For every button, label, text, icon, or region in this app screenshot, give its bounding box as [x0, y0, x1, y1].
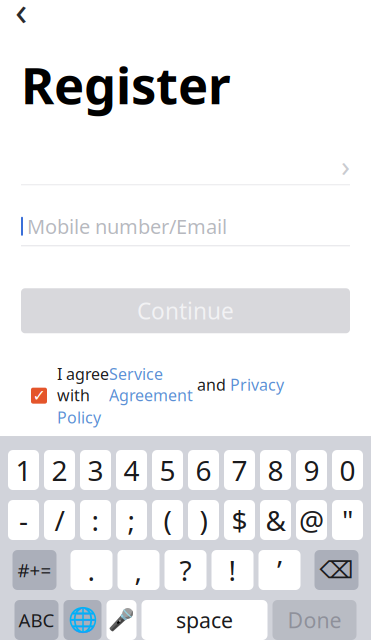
button[interactable]: -: [8, 500, 39, 540]
button[interactable]: Dictation: [106, 600, 136, 640]
staticText: Register: [21, 51, 231, 118]
button[interactable]: #+=: [12, 550, 56, 590]
staticText: ›: [341, 146, 350, 185]
button[interactable]: 6: [188, 450, 219, 490]
staticText: ?: [179, 551, 191, 589]
button[interactable]: ;: [116, 500, 147, 540]
button[interactable]: ): [188, 500, 219, 540]
staticText: ’: [277, 551, 282, 589]
button[interactable]: Continue: [21, 288, 350, 333]
button[interactable]: $: [224, 500, 255, 540]
button[interactable]: space: [141, 600, 267, 640]
button[interactable]: ABC: [14, 600, 58, 640]
button[interactable]: @: [296, 500, 327, 540]
staticText: Privacy: [230, 374, 284, 395]
button[interactable]: ?: [164, 550, 206, 590]
button[interactable]: !: [211, 550, 253, 590]
staticText: .: [87, 551, 95, 589]
staticText: ": [342, 501, 353, 539]
staticText: ,: [134, 551, 142, 589]
button[interactable]: Delete: [314, 550, 358, 590]
staticText: Continue: [137, 296, 234, 326]
button[interactable]: Policy: [57, 407, 101, 428]
button[interactable]: (: [152, 500, 183, 540]
staticText: Done: [287, 606, 341, 634]
staticText: 2: [51, 451, 67, 489]
staticText: Policy: [57, 407, 101, 428]
button[interactable]: ’: [258, 550, 300, 590]
staticText: 3: [87, 451, 103, 489]
button[interactable]: 9: [296, 450, 327, 490]
staticText: ABC: [18, 608, 54, 632]
staticText: 🌐: [67, 606, 97, 634]
staticText: 8: [267, 451, 283, 489]
staticText: Mobile number/Email: [27, 213, 227, 240]
staticText: Service Agreement: [109, 363, 193, 406]
button[interactable]: .: [70, 550, 112, 590]
button[interactable]: 5: [152, 450, 183, 490]
staticText: 7: [231, 451, 247, 489]
button[interactable]: ": [332, 500, 363, 540]
staticText: 1: [15, 451, 31, 489]
staticText: space: [176, 606, 233, 634]
button[interactable]: /: [44, 500, 75, 540]
staticText: (: [163, 501, 171, 539]
staticText: 6: [195, 451, 211, 489]
staticText: #+=: [17, 558, 51, 582]
button[interactable]: :: [80, 500, 111, 540]
button[interactable]: 1: [8, 450, 39, 490]
button[interactable]: 2: [44, 450, 75, 490]
staticText: 0: [339, 451, 355, 489]
staticText: @: [299, 501, 324, 539]
button[interactable]: Done: [272, 600, 356, 640]
staticText: 4: [123, 451, 139, 489]
button[interactable]: &: [260, 500, 291, 540]
staticText: I agree with: [57, 363, 109, 406]
button[interactable]: Country/Region: [21, 146, 350, 185]
staticText: ⌫: [319, 556, 353, 584]
staticText: /: [54, 501, 64, 539]
staticText: ;: [127, 501, 135, 539]
staticText: -: [19, 501, 28, 539]
button[interactable]: Service Agreement: [109, 363, 193, 406]
button[interactable]: 3: [80, 450, 111, 490]
button[interactable]: 0: [332, 450, 363, 490]
button[interactable]: Privacy: [230, 374, 284, 395]
button[interactable]: 4: [116, 450, 147, 490]
staticText: 5: [159, 451, 175, 489]
staticText: ): [199, 501, 207, 539]
button[interactable]: Agree to terms: [31, 388, 47, 404]
staticText: &: [265, 501, 285, 539]
staticText: 🎤: [108, 608, 135, 632]
staticText: ✓: [32, 387, 45, 405]
staticText: :: [91, 501, 99, 539]
button[interactable]: Next keyboard: [63, 600, 101, 640]
staticText: ‹: [15, 0, 27, 36]
staticText: $: [231, 501, 247, 539]
staticText: and: [193, 374, 230, 395]
button[interactable]: 7: [224, 450, 255, 490]
staticText: 9: [303, 451, 319, 489]
staticText: !: [228, 551, 236, 589]
button[interactable]: Back: [0, 0, 42, 29]
button[interactable]: ,: [117, 550, 159, 590]
button[interactable]: 8: [260, 450, 291, 490]
